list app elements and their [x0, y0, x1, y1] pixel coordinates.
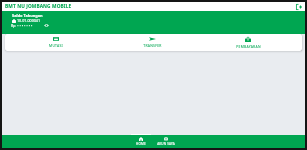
staticText: 10.01.000041: [17, 18, 41, 23]
staticText: Rp: [11, 23, 16, 28]
staticText: HOME: [136, 142, 146, 146]
button[interactable]: Show balance: [43, 22, 49, 28]
staticText: Saldo Tabungan: [12, 13, 43, 18]
button[interactable]: HOME: [128, 134, 153, 148]
staticText: MUTASI: [49, 43, 63, 48]
button[interactable]: AKUN SAYA: [153, 134, 178, 148]
button[interactable]: PEMBAYARAN: [200, 34, 296, 51]
button[interactable]: Logout: [294, 2, 303, 11]
staticText: TRANSFER: [143, 43, 162, 48]
button[interactable]: MUTASI: [7, 34, 104, 51]
staticText: AKUN SAYA: [157, 142, 175, 146]
button[interactable]: TRANSFER: [104, 34, 200, 51]
staticText: PEMBAYARAN: [236, 44, 261, 49]
staticText: BMT NU JOMBANG MOBILE: [5, 3, 72, 10]
